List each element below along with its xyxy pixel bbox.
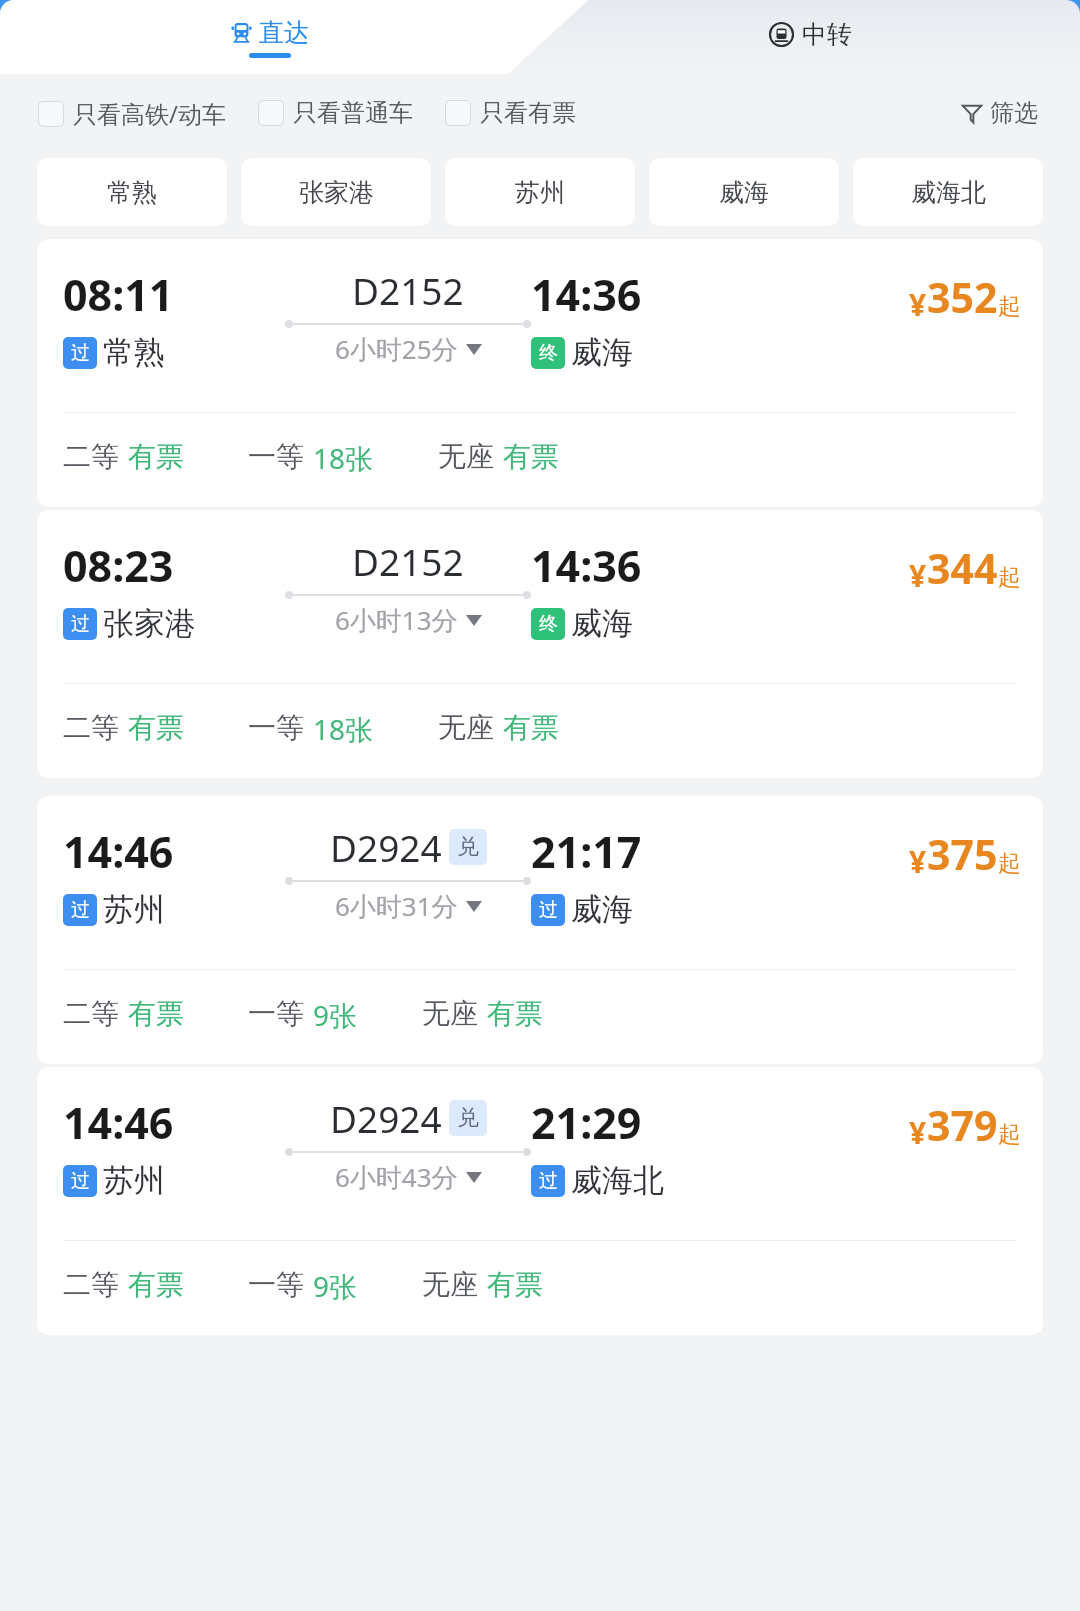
staticText: 9张 [313, 1267, 358, 1305]
staticText: 起 [998, 563, 1021, 592]
staticText: D2152 [352, 265, 464, 315]
staticText: 一等 [248, 996, 304, 1031]
staticText: 终 [539, 341, 558, 365]
staticText: 威海北 [571, 1161, 664, 1200]
staticText: 苏州 [103, 890, 165, 929]
staticText: 过 [539, 898, 558, 922]
button[interactable]: 苏州 [445, 158, 635, 226]
button[interactable]: 常熟 [37, 158, 227, 226]
staticText: 一等 [248, 710, 304, 745]
button[interactable]: 筛选 [957, 94, 1042, 132]
staticText: 二等 [63, 996, 119, 1031]
staticText: 二等 [63, 439, 119, 474]
staticText: 起 [998, 849, 1021, 878]
staticText: 375 [927, 826, 998, 882]
staticText: 苏州 [103, 1161, 165, 1200]
staticText: 只看有票 [480, 98, 576, 128]
staticText: 14:36 [531, 265, 642, 324]
staticText: 起 [998, 1120, 1021, 1149]
button[interactable]: 只看有票 [445, 98, 576, 128]
staticText: 6小时31分 [335, 888, 458, 924]
staticText: 一等 [248, 1267, 304, 1302]
staticText: 过 [71, 1169, 90, 1193]
staticText: 有票 [128, 996, 184, 1031]
staticText: D2924 [330, 1093, 442, 1143]
button[interactable]: 08:23 [37, 510, 1043, 778]
staticText: 无座 [422, 1267, 478, 1302]
staticText: 有票 [487, 996, 543, 1031]
button[interactable]: 威海 [649, 158, 839, 226]
staticText: 张家港 [299, 177, 374, 208]
staticText: 14:46 [63, 1093, 174, 1152]
staticText: 有票 [128, 439, 184, 474]
staticText: 直达 [259, 17, 309, 48]
staticText: 威海 [571, 333, 633, 372]
staticText: 兑 [457, 1104, 479, 1132]
staticText: 18张 [313, 439, 374, 477]
button[interactable]: 中转 [540, 0, 1080, 74]
staticText: 379 [927, 1097, 998, 1153]
staticText: 常熟 [107, 177, 157, 208]
button[interactable]: 08:11 [37, 239, 1043, 507]
staticText: D2924 [330, 822, 442, 872]
staticText: ¥ [909, 284, 927, 325]
staticText: 二等 [63, 1267, 119, 1302]
staticText: 威海 [571, 604, 633, 643]
button[interactable]: 14:46 [37, 1067, 1043, 1335]
staticText: 有票 [128, 1267, 184, 1302]
staticText: 中转 [802, 19, 852, 50]
button[interactable]: 只看高铁/动车 [38, 97, 226, 130]
staticText: 无座 [422, 996, 478, 1031]
button[interactable]: 直达 [0, 0, 540, 74]
staticText: 08:23 [63, 536, 174, 595]
staticText: 兑 [457, 833, 479, 861]
button[interactable]: 14:46 [37, 796, 1043, 1064]
staticText: ¥ [909, 1112, 927, 1153]
staticText: 过 [71, 898, 90, 922]
staticText: ¥ [909, 841, 927, 882]
staticText: 只看高铁/动车 [73, 97, 226, 130]
staticText: 一等 [248, 439, 304, 474]
staticText: 有票 [487, 1267, 543, 1302]
staticText: 有票 [503, 439, 559, 474]
staticText: 21:17 [531, 822, 642, 881]
staticText: 威海 [719, 177, 769, 208]
staticText: 张家港 [103, 604, 196, 643]
staticText: 终 [539, 612, 558, 636]
staticText: 筛选 [990, 98, 1038, 128]
staticText: 无座 [438, 439, 494, 474]
staticText: 14:46 [63, 822, 174, 881]
button[interactable]: 威海北 [853, 158, 1043, 226]
staticText: 344 [927, 540, 998, 596]
staticText: 起 [998, 292, 1021, 321]
staticText: 过 [71, 612, 90, 636]
button[interactable]: 只看普通车 [258, 98, 413, 128]
staticText: 只看普通车 [293, 98, 413, 128]
staticText: 有票 [128, 710, 184, 745]
staticText: 14:36 [531, 536, 642, 595]
staticText: 过 [539, 1169, 558, 1193]
staticText: 08:11 [63, 265, 174, 324]
staticText: 6小时25分 [335, 331, 458, 367]
staticText: D2152 [352, 536, 464, 586]
staticText: 二等 [63, 710, 119, 745]
staticText: 352 [927, 269, 998, 325]
staticText: 无座 [438, 710, 494, 745]
button[interactable]: 张家港 [241, 158, 431, 226]
staticText: 过 [71, 341, 90, 365]
staticText: 威海北 [911, 177, 986, 208]
staticText: 18张 [313, 710, 374, 748]
staticText: 9张 [313, 996, 358, 1034]
staticText: 常熟 [103, 333, 165, 372]
staticText: 6小时13分 [335, 602, 458, 638]
staticText: 威海 [571, 890, 633, 929]
staticText: 苏州 [515, 177, 565, 208]
staticText: ¥ [909, 555, 927, 596]
staticText: 有票 [503, 710, 559, 745]
staticText: 21:29 [531, 1093, 642, 1152]
staticText: 6小时43分 [335, 1159, 458, 1195]
